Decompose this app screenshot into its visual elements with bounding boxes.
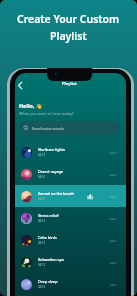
button[interactable]: More options: [107, 257, 118, 268]
staticText: Stress relief: [38, 213, 59, 218]
button[interactable]: Sunset on the beach: [15, 185, 126, 207]
button[interactable]: Deep sleep: [15, 273, 126, 295]
staticText: 04:12: [38, 219, 46, 223]
staticText: 04:12: [38, 263, 46, 267]
staticText: Deep sleep: [38, 279, 58, 284]
staticText: Hello, 👋: [19, 102, 43, 109]
staticText: 04:12: [38, 197, 46, 201]
button[interactable]: Desert voyage: [15, 163, 126, 185]
button[interactable]: Pause: [85, 192, 94, 201]
staticText: What you want to hear today?: [19, 111, 74, 116]
button[interactable]: Northern lights: [15, 141, 126, 163]
staticText: 04:12: [38, 153, 46, 157]
staticText: Playlist: [62, 81, 77, 87]
staticText: 04:12: [38, 175, 46, 179]
staticText: 04:12: [38, 241, 46, 245]
button[interactable]: Relaxation spa: [15, 251, 126, 273]
staticText: Desert voyage: [38, 169, 64, 174]
staticText: 04:12: [38, 285, 46, 289]
staticText: Relaxation spa: [38, 257, 64, 262]
staticText: Create Your Custom: [17, 12, 120, 26]
button[interactable]: More options: [107, 191, 118, 202]
button[interactable]: More options: [107, 235, 118, 246]
button[interactable]: Back: [15, 79, 27, 92]
button[interactable]: More options: [107, 169, 118, 180]
staticText: Calm birds: [38, 235, 57, 240]
button[interactable]: Search noise sounds: [19, 121, 120, 135]
staticText: Sunset on the beach: [38, 191, 74, 196]
staticText: Search noise sounds: [32, 126, 64, 130]
staticText: Playlist: [50, 29, 87, 43]
button[interactable]: Stress relief: [15, 207, 126, 229]
button[interactable]: More options: [107, 147, 118, 158]
staticText: Northern lights: [38, 147, 66, 152]
button[interactable]: More options: [107, 279, 118, 290]
button[interactable]: More options: [107, 213, 118, 224]
button[interactable]: Calm birds: [15, 229, 126, 251]
